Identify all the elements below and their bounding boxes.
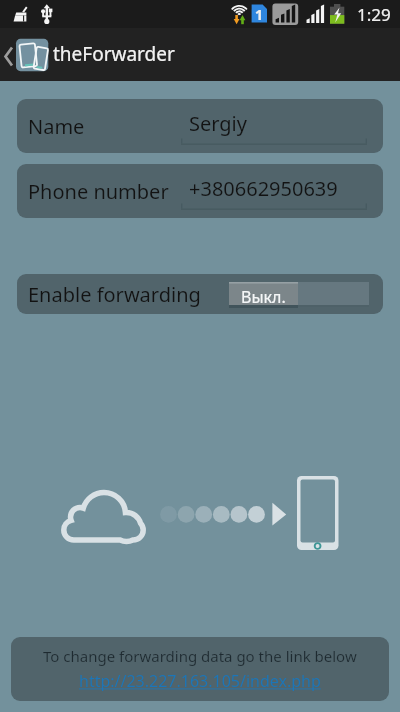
staticText: Enable forwarding xyxy=(28,281,201,308)
staticText: Выкл. xyxy=(241,286,286,308)
staticText: 1 xyxy=(255,5,264,24)
button[interactable]: To change forwarding data go the link be… xyxy=(11,637,389,701)
button[interactable]: Выкл. xyxy=(229,282,369,309)
button[interactable]: Name xyxy=(17,99,383,153)
staticText: theForwarder xyxy=(53,41,175,67)
staticText: +380662950639 xyxy=(189,175,338,202)
staticText: Name xyxy=(28,113,85,140)
button[interactable]: Navigate up xyxy=(0,28,400,81)
staticText: http://23.227.163.105/index.php xyxy=(79,670,321,692)
staticText: To change forwarding data go the link be… xyxy=(43,646,357,666)
button[interactable]: Phone number xyxy=(17,164,383,218)
staticText: Sergiy xyxy=(189,110,247,137)
staticText: 1:29 xyxy=(357,3,391,26)
staticText: Phone number xyxy=(28,178,169,205)
